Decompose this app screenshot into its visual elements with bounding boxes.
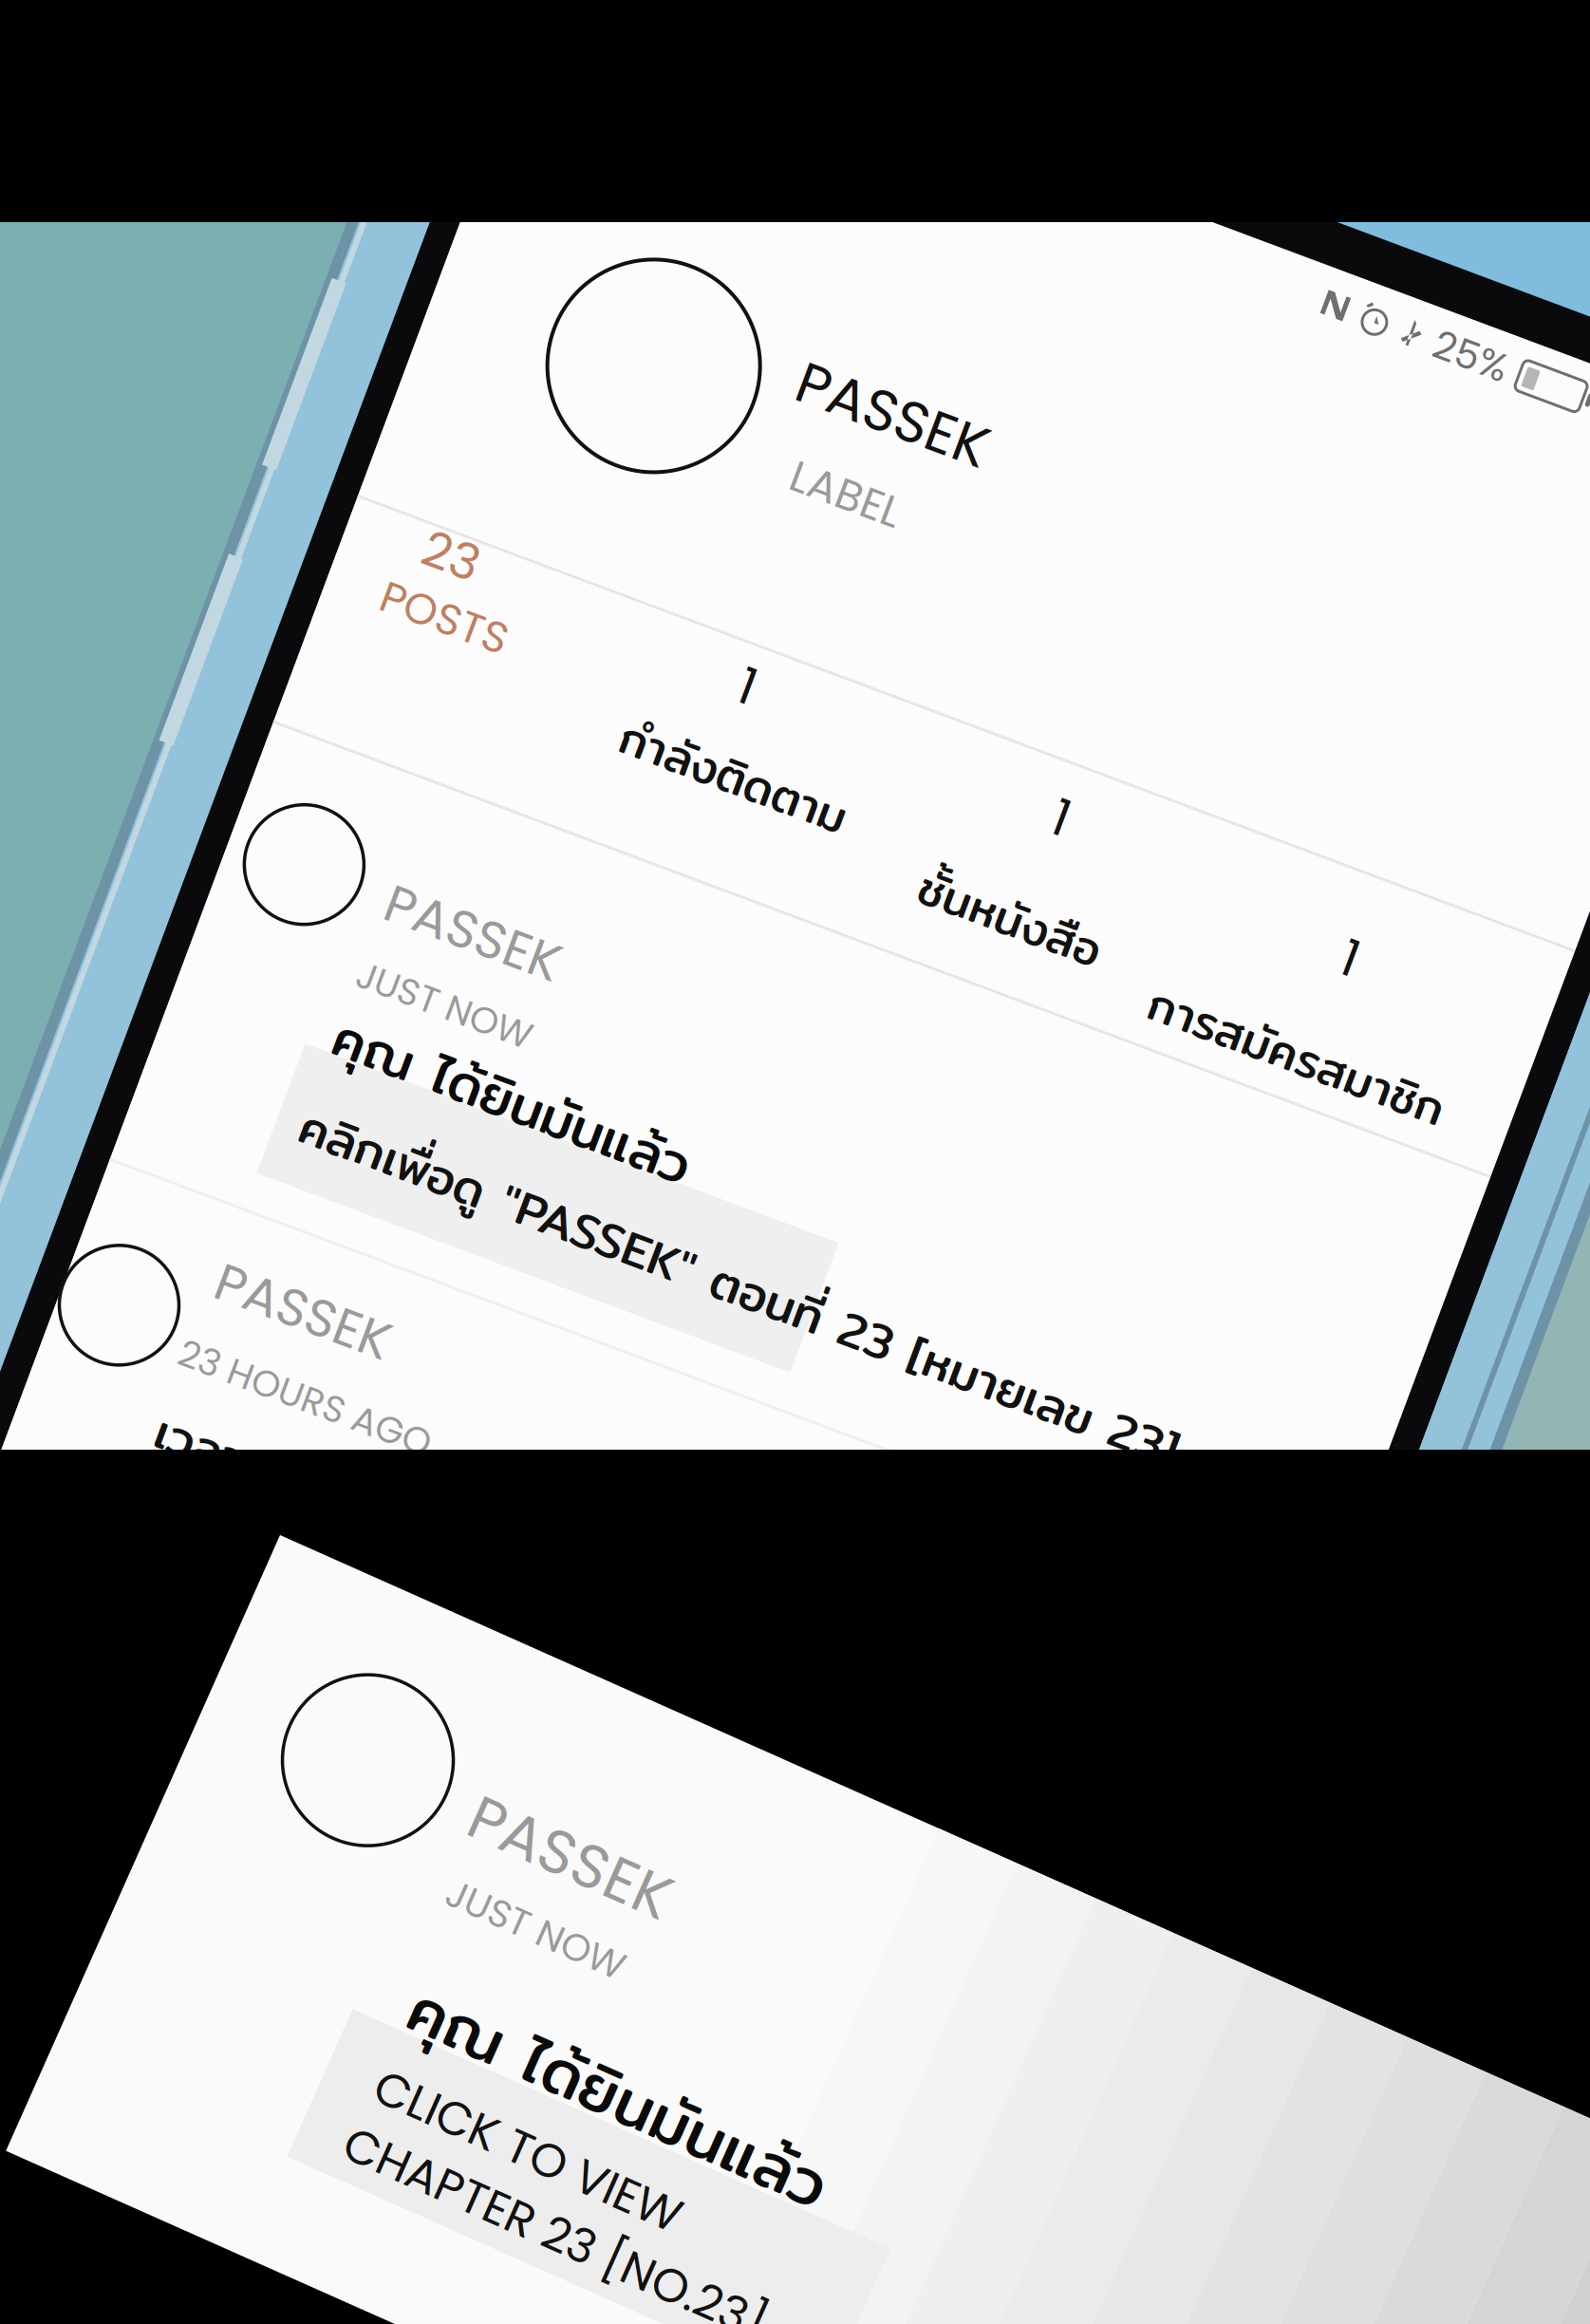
staticText: CLICK TO VIEW <box>591 1964 923 2030</box>
staticText: CHAPTER 23 [NO.23]. <box>587 2029 1054 2094</box>
button[interactable]: PASSEK <box>552 80 1590 410</box>
staticText: คุณ ได้ยินมันแล้ว <box>350 995 727 1079</box>
button[interactable]: PASSEK <box>366 1620 1221 2208</box>
button[interactable]: PASSEK <box>552 820 1590 1276</box>
button[interactable]: PASSEK <box>552 1266 1590 1684</box>
staticText: เวลาคุณ <box>691 1437 856 1513</box>
staticText: PASSEK <box>569 1669 784 1754</box>
staticText: PASSEK <box>695 1278 879 1350</box>
staticText: 23 HOURS AGO <box>685 1369 952 1420</box>
staticText: POSTS <box>609 585 743 645</box>
staticText: PASSEK <box>721 864 906 937</box>
staticText: คลิกเพื่อดู "PASSEK" ตอนที่ 23 [หมายเลข … <box>720 1101 1590 1177</box>
button[interactable]: 23 <box>590 511 875 739</box>
staticText: คุณ ได้ยินมันแล้ว <box>432 1959 884 2059</box>
